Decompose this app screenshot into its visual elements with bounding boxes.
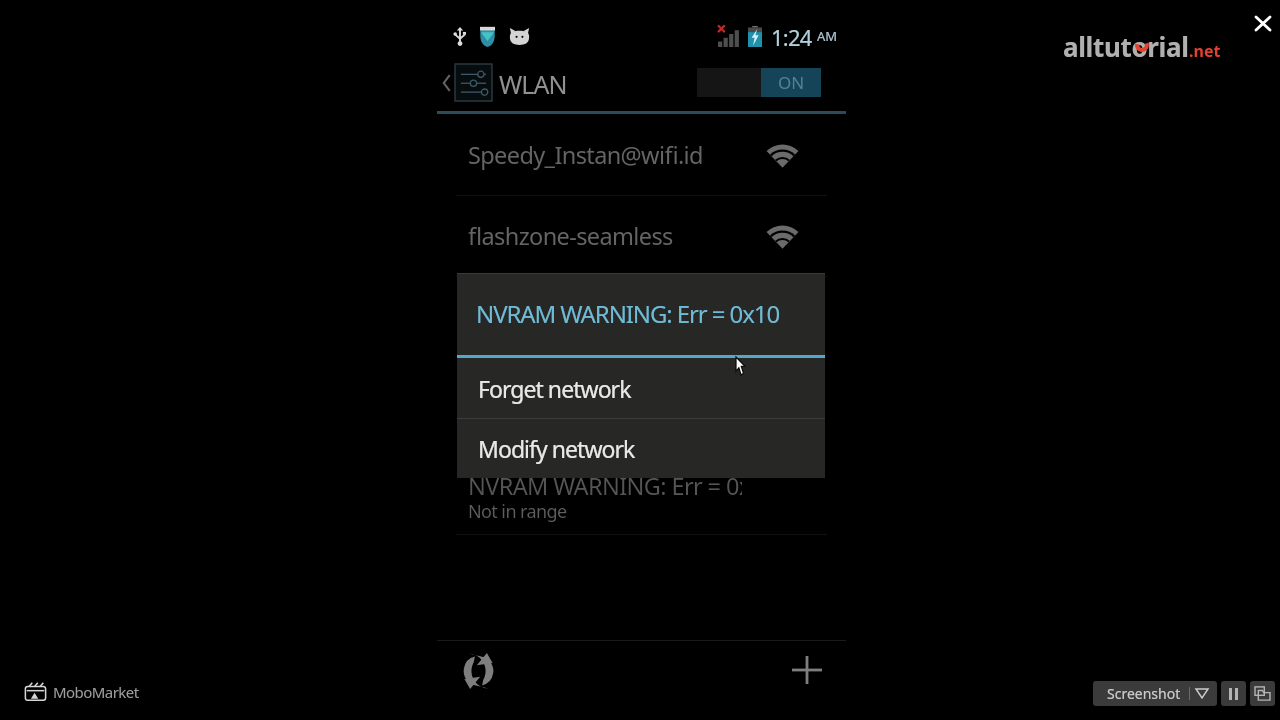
button[interactable]: Open folder [1250,681,1275,706]
button[interactable]: Speedy_Instan@wifi.id [437,115,846,195]
staticText: ON [778,71,805,94]
staticText: 1:24 [771,22,812,52]
staticText: .net [1189,40,1221,62]
button[interactable]: Wi-Fi on [697,68,821,97]
staticText: Screenshot [1107,684,1181,703]
staticText: NVRAM WARNING: Err = 0x10 [476,297,780,330]
staticText: AM [817,27,838,45]
button[interactable]: NVRAM WARNING: Err = 0x10 [437,458,846,538]
staticText: Not in range [468,499,567,524]
button[interactable]: flashzone-seamless [437,196,846,276]
button[interactable]: Pause recording [1221,681,1246,706]
button[interactable]: Close [1249,9,1277,37]
staticText: NVRAM WARNING: Err = 0x10 [468,470,742,502]
staticText: Speedy_Instan@wifi.id [468,139,703,171]
staticText: MoboMarket [53,682,139,702]
staticText: Forget network [478,373,631,404]
staticText: flashzone-seamless [468,220,673,252]
button[interactable]: Screenshot [1093,681,1217,706]
button[interactable]: Modify network [457,419,825,478]
button[interactable]: Scan [437,643,537,699]
button[interactable]: Forget network [457,359,825,418]
button[interactable]: WLAN [437,58,607,111]
button[interactable]: Add network [757,643,846,699]
staticText: Modify network [478,433,635,464]
staticText: WLAN [499,67,567,101]
staticText: alltutorial [1063,29,1189,64]
